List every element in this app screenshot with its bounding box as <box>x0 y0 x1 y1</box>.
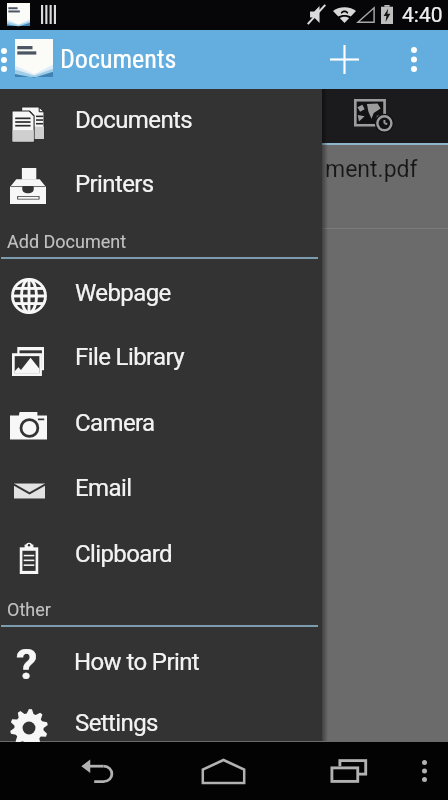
button[interactable]: Webpage <box>0 273 322 319</box>
staticText: Webpage <box>75 279 171 307</box>
button[interactable]: More options <box>404 742 444 800</box>
button[interactable]: Back <box>67 742 127 800</box>
staticText: Settings <box>75 709 158 737</box>
button[interactable]: More options <box>396 30 432 89</box>
staticText: Documents <box>60 44 177 74</box>
button[interactable]: ? <box>0 641 322 687</box>
staticText: Camera <box>75 409 155 437</box>
button[interactable]: Settings <box>0 705 322 751</box>
staticText: Documents <box>75 106 193 134</box>
staticText: Email <box>75 474 132 502</box>
button[interactable]: Printers <box>0 163 322 209</box>
staticText: ? <box>16 639 38 685</box>
button[interactable]: Recent apps <box>319 742 379 800</box>
staticText: Other <box>7 599 51 620</box>
staticText: 4:40 <box>402 3 443 28</box>
staticText: File Library <box>75 343 185 371</box>
button[interactable]: Home <box>193 742 253 800</box>
staticText: ment.pdf <box>325 156 418 183</box>
staticText: Add Document <box>7 231 127 252</box>
button[interactable]: Documents <box>52 30 202 89</box>
button[interactable]: Open navigation drawer <box>0 30 12 89</box>
staticText: Printers <box>75 170 154 198</box>
button[interactable]: Documents <box>0 101 322 147</box>
button[interactable]: Email <box>0 468 322 514</box>
staticText: How to Print <box>74 648 200 676</box>
staticText: Clipboard <box>75 540 173 568</box>
button[interactable]: Clipboard <box>0 535 322 581</box>
button[interactable]: Camera <box>0 404 322 450</box>
button[interactable]: Add <box>322 30 366 89</box>
button[interactable]: File Library <box>0 338 322 384</box>
